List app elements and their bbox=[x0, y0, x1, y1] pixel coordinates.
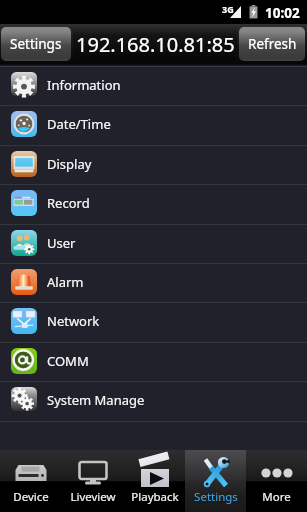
staticText: Alarm bbox=[47, 273, 84, 291]
button[interactable]: Liveview bbox=[62, 450, 124, 512]
staticText: 10:02 bbox=[265, 4, 300, 22]
button[interactable]: Information bbox=[0, 67, 307, 106]
button[interactable]: Alarm bbox=[0, 264, 307, 303]
staticText: Liveview bbox=[70, 489, 116, 505]
staticText: 3G bbox=[222, 3, 234, 15]
staticText: Network bbox=[47, 312, 100, 330]
staticText: 192.168.10.81:85 bbox=[76, 31, 235, 58]
button[interactable]: System Manage bbox=[0, 382, 307, 421]
staticText: System Manage bbox=[47, 391, 145, 409]
button[interactable]: Refresh bbox=[239, 27, 305, 61]
staticText: Playback bbox=[131, 489, 179, 505]
button[interactable]: Playback bbox=[124, 450, 185, 512]
staticText: Settings bbox=[10, 35, 62, 53]
button[interactable]: Record bbox=[0, 185, 307, 224]
button[interactable]: Device bbox=[0, 450, 62, 512]
button[interactable]: Network bbox=[0, 303, 307, 342]
button[interactable]: COMM bbox=[0, 343, 307, 382]
staticText: Record bbox=[47, 194, 90, 212]
staticText: Refresh bbox=[248, 35, 297, 53]
button[interactable]: More bbox=[246, 450, 307, 512]
button[interactable]: Settings bbox=[185, 450, 246, 512]
staticText: Date/Time bbox=[47, 115, 111, 133]
button[interactable]: Display bbox=[0, 146, 307, 185]
staticText: Display bbox=[47, 155, 92, 173]
button[interactable]: Settings bbox=[1, 27, 71, 61]
staticText: More bbox=[262, 489, 291, 505]
staticText: User bbox=[47, 234, 76, 252]
staticText: Device bbox=[13, 489, 49, 505]
staticText: COMM bbox=[47, 352, 89, 370]
staticText: Settings bbox=[194, 489, 238, 505]
button[interactable]: Date/Time bbox=[0, 106, 307, 145]
button[interactable]: User bbox=[0, 225, 307, 264]
staticText: Information bbox=[47, 76, 121, 94]
